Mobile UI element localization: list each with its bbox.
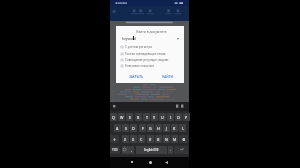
- button[interactable]: M: [171, 135, 178, 143]
- staticText: B: [157, 137, 160, 142]
- staticText: K: [173, 126, 176, 131]
- staticText: H: [157, 126, 160, 131]
- staticText: V: [149, 137, 152, 142]
- button[interactable]: H: [155, 124, 162, 132]
- staticText: S: [125, 126, 127, 131]
- staticText: X: [132, 137, 135, 142]
- staticText: C: [140, 137, 143, 142]
- staticText: T: [146, 115, 148, 120]
- staticText: D: [132, 126, 135, 131]
- button[interactable]: C: [138, 135, 145, 143]
- staticText: Q: [112, 115, 115, 120]
- button[interactable]: Z: [122, 135, 129, 143]
- button[interactable]: D: [130, 124, 137, 132]
- staticText: ?123: [112, 148, 118, 152]
- button[interactable]: Enter: [174, 146, 188, 154]
- staticText: O: [177, 115, 180, 120]
- button[interactable]: B: [155, 135, 162, 143]
- button[interactable]: W: [118, 113, 125, 121]
- button[interactable]: N: [163, 135, 170, 143]
- staticText: P: [185, 115, 188, 120]
- staticText: W: [120, 115, 124, 120]
- staticText: С учетом регистра: [125, 45, 152, 49]
- button[interactable]: Y: [151, 113, 158, 121]
- button[interactable]: English (US): [136, 146, 167, 154]
- button[interactable]: С учетом регистра: [116, 44, 184, 49]
- button[interactable]: I: [167, 113, 174, 121]
- button[interactable]: E: [126, 113, 133, 121]
- button[interactable]: .: [168, 146, 173, 154]
- button[interactable]: ЗАКРЫТЬ: [127, 74, 146, 80]
- staticText: A: [116, 126, 119, 131]
- button[interactable]: НАЙТИ: [160, 74, 175, 80]
- button[interactable]: Backspace: [179, 135, 188, 143]
- staticText: J: [166, 126, 167, 131]
- staticText: G: [149, 126, 152, 131]
- button[interactable]: Совпадение регулярн. выраж.: [116, 57, 184, 62]
- button[interactable]: ,: [129, 146, 134, 154]
- button[interactable]: U: [159, 113, 166, 121]
- staticText: Z: [124, 137, 127, 142]
- button[interactable]: Ключевое значение: [116, 63, 184, 68]
- staticText: Найти в документе: [136, 29, 167, 33]
- staticText: U: [161, 115, 164, 120]
- button[interactable]: K: [171, 124, 178, 132]
- staticText: I: [170, 115, 172, 120]
- staticText: N: [165, 137, 168, 142]
- button[interactable]: Emoji: [122, 146, 129, 154]
- staticText: M: [173, 137, 177, 142]
- button[interactable]: T: [143, 113, 150, 121]
- staticText: L: [182, 126, 184, 131]
- staticText: Только совпадающие слова: [125, 52, 166, 56]
- button[interactable]: A: [114, 124, 121, 132]
- button[interactable]: Q: [110, 113, 117, 121]
- button[interactable]: J: [163, 124, 170, 132]
- staticText: English (US): [144, 148, 159, 152]
- button[interactable]: ?123: [110, 146, 120, 154]
- staticText: E: [129, 115, 131, 120]
- staticText: ,: [131, 148, 132, 152]
- staticText: НАЙТИ: [162, 75, 173, 79]
- button[interactable]: O: [175, 113, 182, 121]
- staticText: F: [142, 126, 144, 131]
- button[interactable]: Back: [161, 157, 171, 167]
- button[interactable]: S: [122, 124, 129, 132]
- button[interactable]: V: [147, 135, 154, 143]
- staticText: Y: [153, 115, 156, 120]
- button[interactable]: X: [130, 135, 137, 143]
- staticText: keyword: [122, 36, 136, 41]
- button[interactable]: P: [183, 113, 190, 121]
- staticText: Совпадение регулярн. выраж.: [125, 58, 169, 62]
- staticText: ЗАКРЫТЬ: [129, 75, 144, 79]
- button[interactable]: G: [147, 124, 154, 132]
- staticText: Ключевое значение: [125, 64, 155, 68]
- button[interactable]: Shift: [110, 135, 119, 143]
- button[interactable]: Home: [145, 157, 155, 167]
- button[interactable]: F: [139, 124, 146, 132]
- button[interactable]: Только совпадающие слова: [116, 51, 184, 56]
- staticText: R: [137, 115, 140, 120]
- button[interactable]: Recents: [127, 157, 137, 167]
- button[interactable]: R: [135, 113, 142, 121]
- button[interactable]: L: [179, 124, 186, 132]
- staticText: .: [170, 148, 171, 152]
